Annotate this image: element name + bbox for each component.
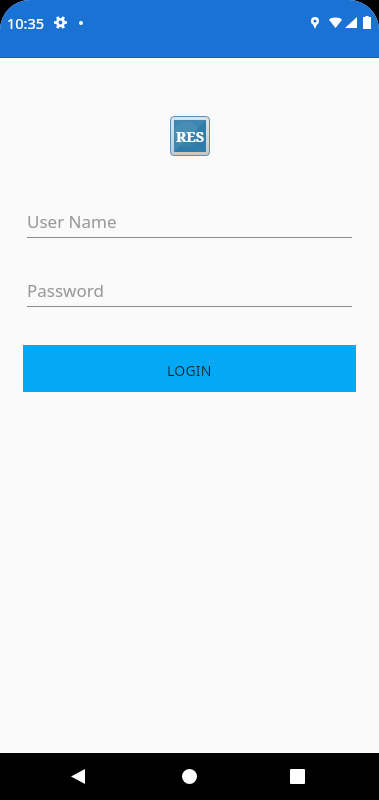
staticText: 10:35 <box>7 13 45 33</box>
staticText: User Name <box>27 210 117 233</box>
button[interactable]: Back <box>50 753 106 800</box>
button[interactable]: Home <box>161 753 217 800</box>
staticText: RES <box>176 126 205 146</box>
button[interactable]: Password <box>27 279 352 307</box>
staticText: Password <box>27 279 104 302</box>
button[interactable]: User Name <box>27 210 352 238</box>
staticText: LOGIN <box>167 361 212 380</box>
button[interactable]: Recent apps <box>269 753 325 800</box>
button[interactable]: LOGIN <box>23 345 356 392</box>
